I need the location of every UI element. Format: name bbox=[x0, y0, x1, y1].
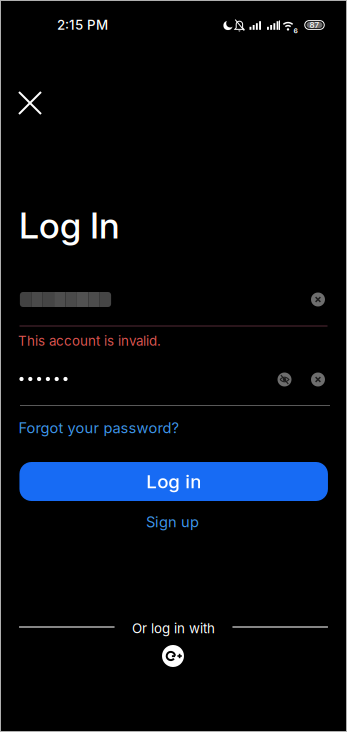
staticText: 87 bbox=[309, 20, 319, 30]
staticText: Log In bbox=[19, 204, 120, 247]
staticText: Forgot your password? bbox=[18, 419, 178, 437]
staticText: Sign up bbox=[146, 513, 199, 531]
staticText: Log in bbox=[146, 470, 201, 492]
button[interactable]: Close bbox=[8, 81, 52, 125]
button[interactable]: Sign up bbox=[138, 509, 207, 535]
button[interactable]: Clear password bbox=[311, 372, 325, 386]
staticText: 6 bbox=[293, 27, 297, 35]
button[interactable]: Log in with Google bbox=[162, 645, 184, 667]
staticText: 2:15 PM bbox=[57, 17, 108, 33]
button[interactable]: Log in bbox=[19, 462, 328, 501]
staticText: This account is invalid. bbox=[18, 333, 161, 349]
staticText: Or log in with bbox=[132, 621, 215, 636]
button[interactable]: Show password bbox=[277, 372, 291, 386]
button[interactable]: Forgot your password? bbox=[0, 419, 347, 437]
button[interactable]: Clear username bbox=[311, 292, 325, 306]
